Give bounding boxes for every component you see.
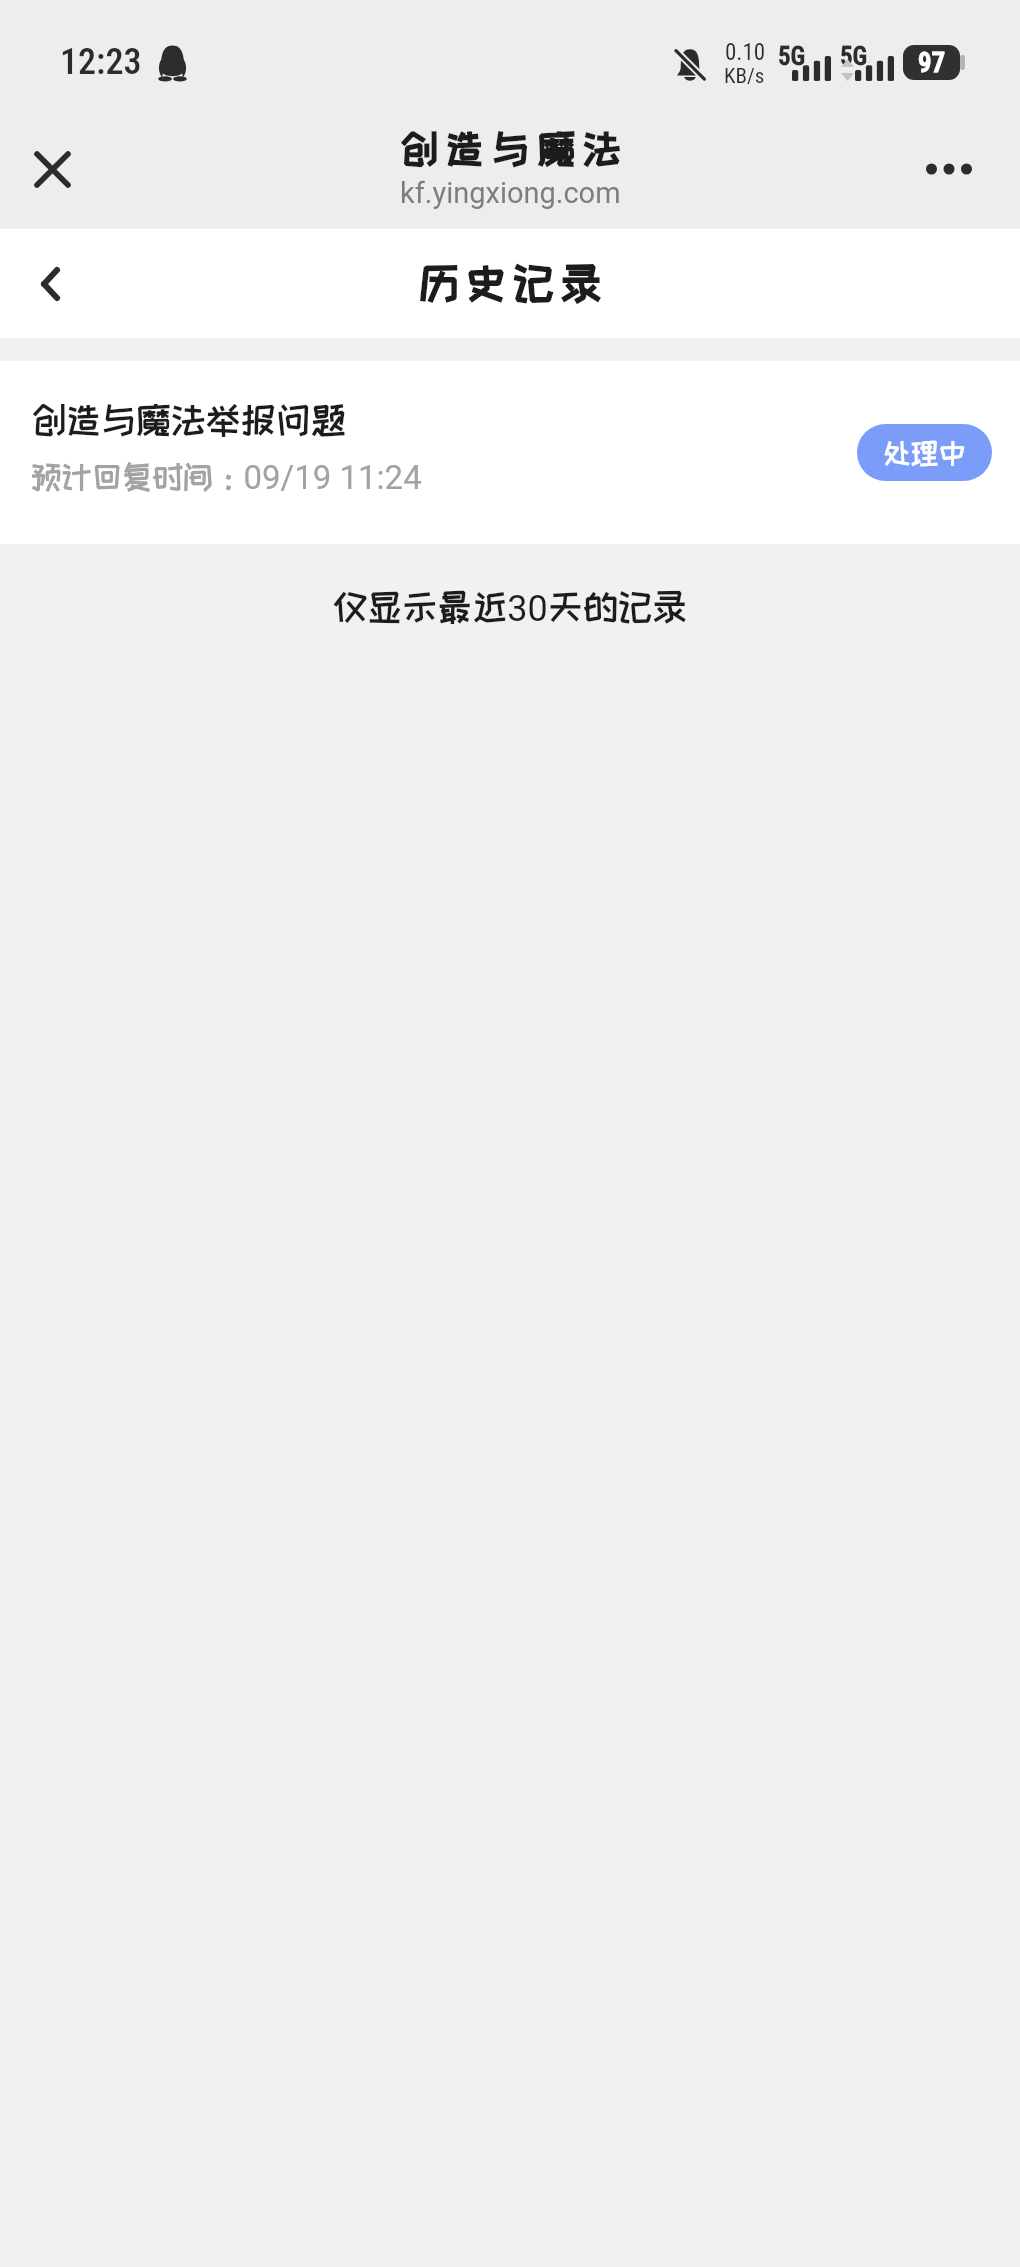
button[interactable]: 处理中 — [857, 424, 992, 481]
staticText: 历史记录 — [418, 260, 608, 305]
button[interactable]: More options — [897, 117, 1001, 221]
staticText: 创造与魔法 — [400, 128, 629, 169]
staticText: 5G — [840, 42, 868, 71]
button[interactable]: Back — [0, 234, 100, 334]
staticText: KB/s — [724, 64, 765, 89]
button[interactable]: 创造与魔法举报问题 — [0, 361, 1020, 544]
button[interactable]: Close — [0, 117, 104, 221]
staticText: 仅显示最近30天的记录 — [0, 588, 1020, 630]
staticText: 0.10 — [725, 39, 766, 66]
staticText: 处理中 — [883, 438, 966, 468]
staticText: 97 — [918, 47, 946, 79]
staticText: 创造与魔法举报问题 — [31, 401, 346, 439]
staticText: 5G — [778, 42, 806, 71]
staticText: 预计回复时间：09/19 11:24 — [31, 458, 422, 497]
staticText: 12:23 — [60, 41, 142, 83]
staticText: kf.yingxiong.com — [400, 176, 621, 210]
